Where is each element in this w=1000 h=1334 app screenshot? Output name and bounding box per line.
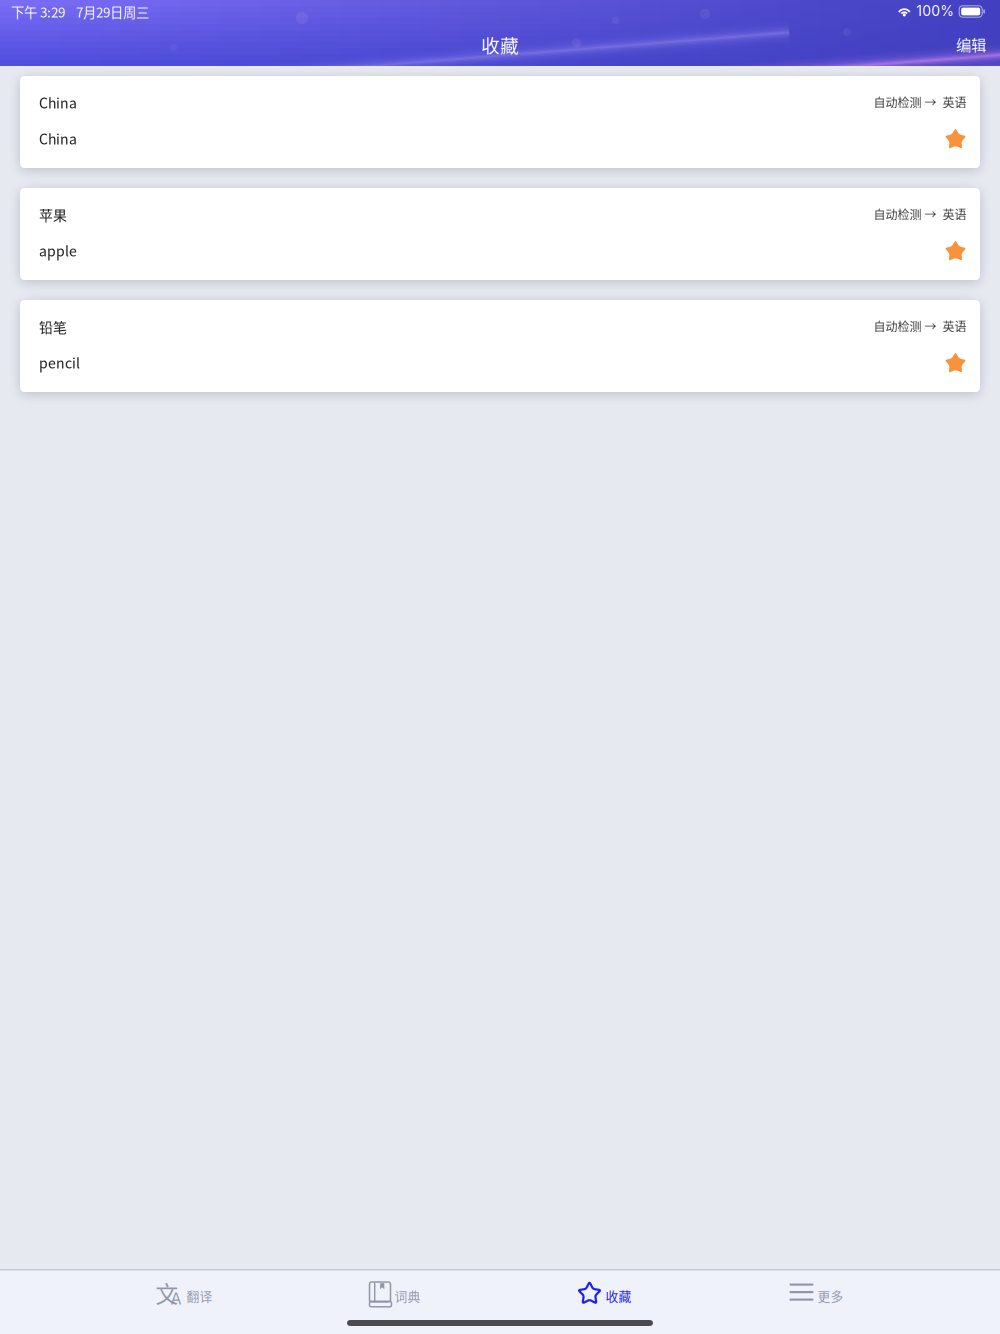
button[interactable]: 收藏 [510,1271,700,1315]
button[interactable]: 苹果 [20,188,980,280]
staticText: 收藏 [481,31,519,58]
staticText: 苹果 [39,204,67,225]
staticText: apple [39,240,77,261]
staticText: 自动检测 → 英语 [873,93,966,111]
button[interactable]: 取消收藏 [938,122,972,156]
staticText: A [170,1289,181,1308]
staticText: 下午 3:29 [11,2,65,21]
button[interactable]: 铅笔 [20,300,980,392]
staticText: 100% [916,2,954,19]
staticText: China [39,92,77,113]
staticText: 自动检测 → 英语 [873,205,966,223]
staticText: 铅笔 [39,316,67,337]
button[interactable]: 取消收藏 [938,234,972,268]
button[interactable]: 词典 [299,1271,489,1315]
button[interactable]: China [20,76,980,168]
staticText: 词典 [394,1286,420,1305]
staticText: 自动检测 → 英语 [873,317,966,335]
staticText: 收藏 [605,1286,631,1305]
staticText: 文 [155,1276,178,1309]
button[interactable]: 编辑 [914,36,986,52]
staticText: 编辑 [956,33,986,55]
staticText: China [39,128,77,149]
button[interactable]: 文 [88,1271,278,1315]
button[interactable]: 取消收藏 [938,346,972,380]
staticText: 更多 [817,1286,843,1305]
staticText: 翻译 [186,1286,212,1305]
staticText: 7月29日周三 [76,2,149,21]
button[interactable]: 更多 [721,1271,911,1315]
staticText: pencil [39,352,80,373]
